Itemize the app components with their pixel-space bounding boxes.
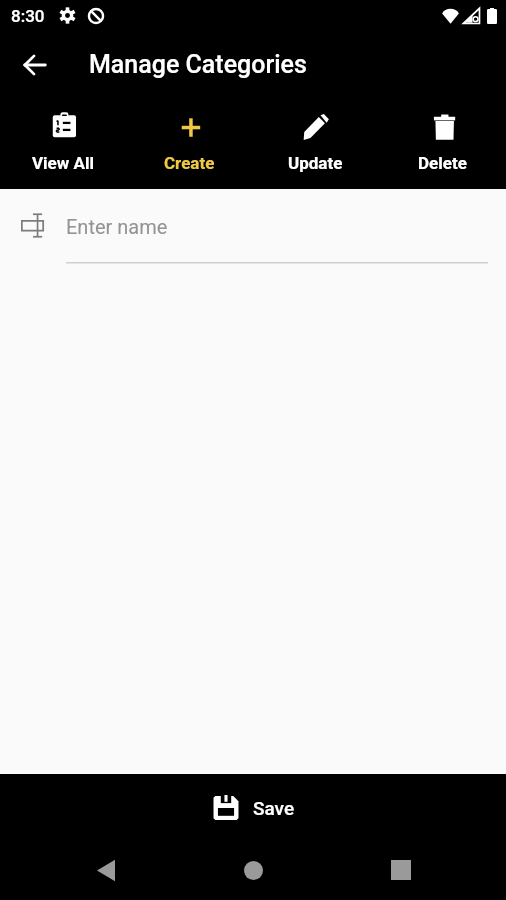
button[interactable]: Create xyxy=(126,95,252,189)
staticText: Save xyxy=(253,797,295,819)
staticText: Update xyxy=(288,153,343,173)
button[interactable]: View All xyxy=(0,95,126,189)
staticText: View All xyxy=(32,153,94,173)
button[interactable]: Home xyxy=(180,840,327,900)
button[interactable]: Delete xyxy=(379,95,506,189)
button[interactable]: Navigate up xyxy=(11,41,59,89)
button[interactable]: Update xyxy=(252,95,379,189)
staticText: Enter name xyxy=(66,215,168,238)
staticText: Create xyxy=(164,153,215,173)
staticText: Delete xyxy=(418,153,467,173)
staticText: 8:30 xyxy=(11,6,45,26)
button[interactable]: Recent apps xyxy=(327,840,474,900)
staticText: Manage Categories xyxy=(89,50,307,79)
button[interactable]: Save xyxy=(198,786,308,828)
button[interactable]: Back xyxy=(32,840,180,900)
